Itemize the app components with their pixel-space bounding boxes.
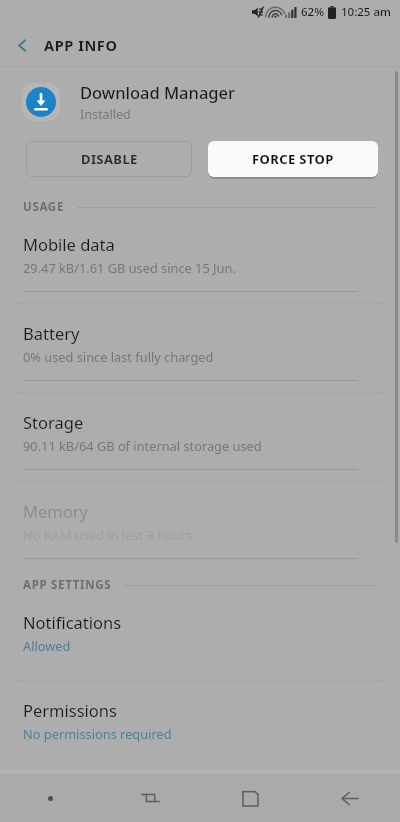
staticText: APP SETTINGS — [23, 577, 112, 593]
button[interactable]: Memory — [0, 482, 400, 558]
button[interactable]: Battery — [0, 304, 400, 380]
staticText: Download Manager — [80, 81, 236, 103]
button[interactable]: Home — [200, 774, 300, 822]
staticText: 90.11 kB/64 GB of internal storage used — [23, 437, 262, 454]
staticText: USAGE — [23, 199, 65, 215]
staticText: Allowed — [23, 637, 71, 654]
staticText: No permissions required — [23, 725, 172, 742]
staticText: Battery — [23, 322, 80, 344]
button[interactable]: Storage — [0, 393, 400, 469]
staticText: APP INFO — [44, 35, 118, 55]
staticText: FORCE STOP — [252, 150, 334, 168]
staticText: 0% used since last fully charged — [23, 348, 214, 365]
staticText: Memory — [23, 500, 88, 522]
staticText: No RAM used in last 3 hours — [23, 526, 193, 543]
staticText: Permissions — [23, 699, 117, 721]
staticText: 62% — [301, 4, 324, 20]
staticText: Notifications — [23, 611, 122, 633]
staticText: Storage — [23, 411, 84, 433]
button[interactable]: Hide navigation bar — [0, 774, 100, 822]
button[interactable]: Back — [300, 774, 400, 822]
staticText: Installed — [80, 106, 131, 123]
staticText: 10:25 am — [341, 4, 391, 20]
staticText: DISABLE — [81, 150, 138, 168]
button[interactable]: Recents — [100, 774, 200, 822]
button[interactable]: Mobile data — [0, 215, 400, 291]
staticText: 29.47 kB/1.61 GB used since 15 Jun. — [23, 259, 236, 276]
staticText: Mobile data — [23, 233, 115, 255]
button[interactable]: DISABLE — [26, 141, 192, 177]
button[interactable]: Permissions — [0, 681, 400, 757]
button[interactable]: Back — [0, 24, 44, 66]
button[interactable]: FORCE STOP — [208, 141, 378, 177]
button[interactable]: Notifications — [0, 593, 400, 669]
